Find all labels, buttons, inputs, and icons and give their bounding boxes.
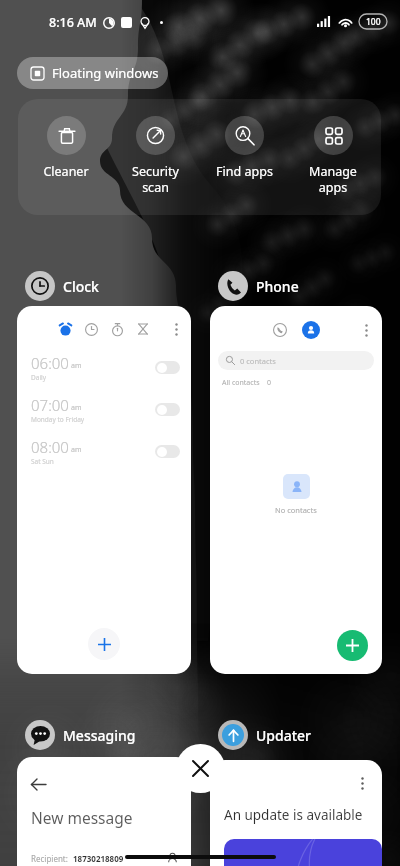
staticText: No contacts <box>275 505 317 515</box>
staticText: am <box>71 361 82 371</box>
button[interactable]: Find apps <box>203 116 285 180</box>
staticText: am <box>71 445 82 455</box>
staticText: Manage apps <box>309 163 357 195</box>
button[interactable]: More options <box>359 323 373 337</box>
staticText: Find apps <box>216 163 273 180</box>
staticText: 07:00 <box>31 395 69 415</box>
button[interactable]: Toggle alarm <box>155 445 180 458</box>
button[interactable]: Pick contact <box>166 852 179 865</box>
staticText: Updater <box>256 726 312 745</box>
button[interactable]: Clock <box>82 320 100 338</box>
staticText: An update is available <box>224 806 363 824</box>
staticText: 8:16 AM <box>49 14 97 31</box>
staticText: Cleaner <box>43 163 89 180</box>
button[interactable]: Alarm <box>56 320 74 338</box>
staticText: Floating windows <box>52 64 159 82</box>
staticText: 08:00 <box>31 437 69 457</box>
button[interactable]: Add alarm <box>88 628 120 660</box>
staticText: Clock <box>63 277 99 296</box>
button[interactable]: Toggle alarm <box>155 403 180 416</box>
staticText: All contacts <box>222 378 260 388</box>
button[interactable]: 08:00 <box>31 436 180 466</box>
staticText: 0 contacts <box>240 356 276 366</box>
button[interactable]: Stopwatch <box>108 320 126 338</box>
button[interactable]: 06:00 <box>31 352 180 382</box>
staticText: Daily <box>31 373 47 382</box>
staticText: 18730218809 <box>73 853 124 864</box>
button[interactable]: Phone <box>218 271 299 301</box>
button[interactable]: 0 contacts <box>218 351 374 370</box>
button[interactable]: Back <box>31 775 49 793</box>
button[interactable]: Contacts <box>302 321 320 339</box>
button[interactable]: Clock <box>25 271 99 301</box>
button[interactable]: Add contact <box>337 630 368 661</box>
button[interactable]: Toggle alarm <box>155 361 180 374</box>
button[interactable]: Timer <box>134 320 152 338</box>
button[interactable]: Cleaner <box>25 116 107 180</box>
staticText: Sat Sun <box>31 457 54 466</box>
button[interactable]: Clear all <box>176 744 225 793</box>
button[interactable]: Floating windows <box>17 57 168 89</box>
button[interactable]: More options <box>355 776 369 790</box>
staticText: Messaging <box>63 726 136 745</box>
button[interactable]: More options <box>169 322 183 336</box>
button[interactable]: 07:00 <box>31 394 180 424</box>
staticText: Recipient: <box>31 853 68 864</box>
button[interactable]: Messaging <box>25 720 136 750</box>
button[interactable]: Updater <box>218 720 312 750</box>
staticText: Phone <box>256 277 299 296</box>
staticText: New message <box>31 807 133 828</box>
staticText: 06:00 <box>31 353 69 373</box>
button[interactable]: Security scan <box>114 116 196 195</box>
staticText: Monday to Friday <box>31 415 85 424</box>
button[interactable]: Manage apps <box>292 116 374 195</box>
staticText: 0 <box>267 378 272 388</box>
button[interactable]: Dialer <box>271 321 289 339</box>
staticText: am <box>71 403 82 413</box>
staticText: Security scan <box>132 163 179 195</box>
staticText: 100 <box>366 16 381 28</box>
